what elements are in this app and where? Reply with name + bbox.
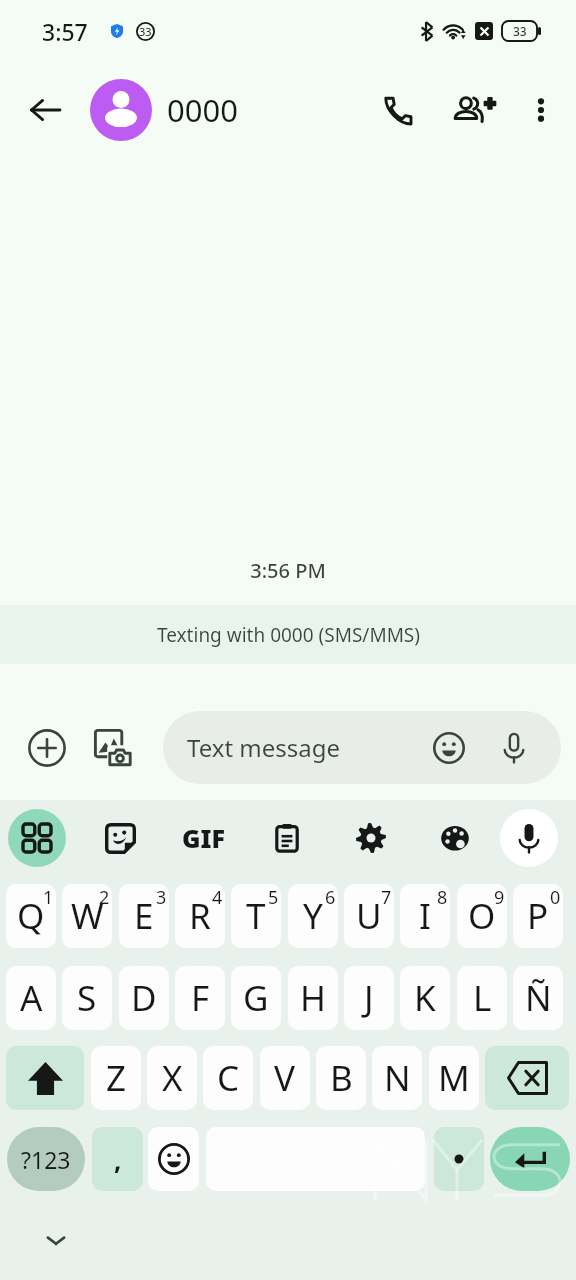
button[interactable]: Voice typing: [500, 809, 558, 867]
staticText: 8: [437, 885, 448, 910]
button[interactable]: Apps: [8, 809, 66, 867]
staticText: P: [527, 892, 549, 940]
staticText: M: [438, 1054, 470, 1102]
button[interactable]: Q: [6, 884, 56, 948]
staticText: 9: [494, 885, 505, 910]
button[interactable]: B: [316, 1046, 366, 1110]
button[interactable]: Enter: [490, 1127, 570, 1191]
button[interactable]: A: [6, 966, 56, 1030]
staticText: B: [330, 1054, 353, 1102]
button[interactable]: U: [344, 884, 394, 948]
button[interactable]: Emoji: [428, 727, 470, 769]
button[interactable]: O: [457, 884, 507, 948]
staticText: C: [217, 1054, 240, 1102]
button[interactable]: E: [119, 884, 169, 948]
staticText: Text message: [187, 731, 341, 764]
button[interactable]: Add person: [452, 90, 501, 139]
button[interactable]: More options: [519, 88, 563, 132]
staticText: 33: [513, 23, 527, 39]
staticText: V: [274, 1054, 296, 1102]
staticText: 2: [99, 885, 110, 910]
staticText: R: [189, 892, 211, 940]
button[interactable]: J: [344, 966, 394, 1030]
button[interactable]: Emoji: [148, 1127, 199, 1191]
staticText: Ñ: [525, 974, 552, 1022]
staticText: 0: [550, 885, 561, 910]
button[interactable]: V: [260, 1046, 310, 1110]
button[interactable]: GIF: [174, 809, 232, 867]
staticText: 5: [268, 885, 279, 910]
button[interactable]: Settings: [342, 809, 400, 867]
button[interactable]: Ñ: [513, 966, 563, 1030]
button[interactable]: H: [288, 966, 338, 1030]
staticText: 0000: [167, 89, 238, 131]
button[interactable]: L: [457, 966, 507, 1030]
button[interactable]: Text message: [163, 711, 561, 784]
staticText: K: [414, 974, 436, 1022]
button[interactable]: Contact avatar: [90, 79, 152, 141]
staticText: I: [419, 892, 431, 940]
button[interactable]: T: [231, 884, 281, 948]
button[interactable]: R: [175, 884, 225, 948]
staticText: 7: [381, 885, 392, 910]
staticText: 3:56 PM: [0, 557, 576, 584]
button[interactable]: D: [119, 966, 169, 1030]
button[interactable]: S: [62, 966, 112, 1030]
staticText: G: [243, 974, 269, 1022]
button[interactable]: N: [372, 1046, 422, 1110]
staticText: J: [364, 974, 374, 1022]
button[interactable]: K: [400, 966, 450, 1030]
staticText: 33: [139, 24, 152, 39]
staticText: 3:57: [42, 16, 88, 47]
staticText: 4: [212, 885, 223, 910]
staticText: X: [162, 1054, 183, 1102]
staticText: Y: [303, 892, 323, 940]
staticText: 6: [325, 885, 336, 910]
staticText: H: [300, 974, 326, 1022]
staticText: 3: [156, 885, 167, 910]
button[interactable]: Attach: [23, 724, 71, 772]
button[interactable]: P: [513, 884, 563, 948]
button[interactable]: Backspace: [485, 1046, 569, 1110]
staticText: D: [131, 974, 157, 1022]
button[interactable]: G: [231, 966, 281, 1030]
button[interactable]: Voice input: [493, 727, 535, 769]
staticText: N: [384, 1054, 411, 1102]
button[interactable]: .: [434, 1127, 484, 1191]
staticText: GIF: [182, 821, 225, 855]
staticText: W: [71, 892, 104, 940]
button[interactable]: M: [429, 1046, 479, 1110]
staticText: O: [468, 892, 496, 940]
staticText: S: [77, 974, 97, 1022]
button[interactable]: Back: [21, 86, 69, 134]
button[interactable]: Call: [373, 86, 421, 134]
staticText: U: [356, 892, 382, 940]
staticText: T: [246, 892, 266, 940]
button[interactable]: Y: [288, 884, 338, 948]
staticText: F: [191, 974, 210, 1022]
button[interactable]: ?123: [7, 1127, 85, 1191]
staticText: Q: [17, 892, 45, 940]
staticText: E: [134, 892, 154, 940]
button[interactable]: Stickers: [91, 809, 149, 867]
button[interactable]: Gallery: [89, 724, 137, 772]
button[interactable]: Clipboard: [258, 809, 316, 867]
button[interactable]: Theme: [426, 809, 484, 867]
button[interactable]: C: [203, 1046, 253, 1110]
staticText: A: [20, 974, 43, 1022]
staticText: Z: [106, 1054, 127, 1102]
button[interactable]: Z: [91, 1046, 141, 1110]
button[interactable]: F: [175, 966, 225, 1030]
button[interactable]: I: [400, 884, 450, 948]
staticText: Texting with 0000 (SMS/MMS): [157, 622, 420, 648]
staticText: 1: [43, 885, 54, 910]
button[interactable]: W: [62, 884, 112, 948]
staticText: ?123: [21, 1144, 71, 1175]
button[interactable]: Shift: [6, 1046, 84, 1110]
staticText: L: [473, 974, 492, 1022]
button[interactable]: Hide keyboard: [36, 1220, 76, 1260]
staticText: ,: [114, 1142, 122, 1177]
button[interactable]: X: [147, 1046, 197, 1110]
button[interactable]: ,: [92, 1127, 143, 1191]
